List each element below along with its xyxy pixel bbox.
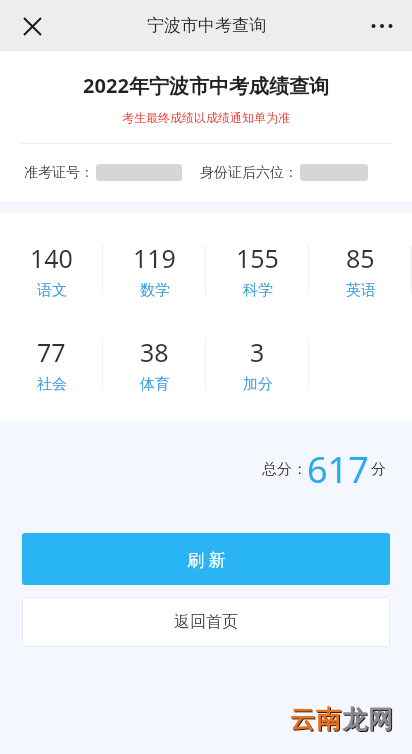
button[interactable]: 85 <box>309 227 412 313</box>
button[interactable]: More options <box>360 4 404 48</box>
staticText: 分 <box>371 460 386 479</box>
staticText: 77 <box>37 335 66 369</box>
button[interactable]: 140 <box>0 227 103 313</box>
staticText: 南 <box>316 704 341 735</box>
staticText: 云 <box>290 704 315 735</box>
staticText: 体育 <box>140 375 170 394</box>
button[interactable]: 38 <box>103 321 206 407</box>
button[interactable]: 3 <box>206 321 309 407</box>
button[interactable]: 119 <box>103 227 206 313</box>
staticText: 南 <box>317 705 342 736</box>
staticText: 云 <box>291 705 316 736</box>
button[interactable]: 刷 新 <box>22 533 390 585</box>
staticText: 617 <box>307 445 369 494</box>
staticText: 85 <box>346 241 375 275</box>
staticText: 155 <box>236 241 279 275</box>
staticText: 准考证号： <box>24 164 94 182</box>
staticText: 龙 <box>343 705 368 736</box>
staticText: 龙 <box>342 704 367 735</box>
button[interactable]: 77 <box>0 321 103 407</box>
staticText: 科学 <box>243 281 273 300</box>
staticText: 宁波市中考查询 <box>147 15 266 36</box>
staticText: 网 <box>369 705 394 736</box>
staticText: 考生最终成绩以成绩通知单为准 <box>0 110 412 125</box>
staticText: 3 <box>250 335 265 369</box>
button[interactable]: 返回首页 <box>22 597 390 647</box>
staticText: 加分 <box>243 375 273 394</box>
staticText: 刷 新 <box>187 548 226 571</box>
staticText: 数学 <box>140 281 170 300</box>
staticText: 2022年宁波市中考成绩查询 <box>0 72 412 99</box>
button[interactable]: Close <box>10 4 54 48</box>
staticText: 总分： <box>262 460 307 479</box>
staticText: 140 <box>30 241 73 275</box>
staticText: 返回首页 <box>174 612 238 632</box>
staticText: 语文 <box>37 281 67 300</box>
staticText: 119 <box>133 241 176 275</box>
staticText: 社会 <box>37 375 67 394</box>
staticText: 英语 <box>346 281 376 300</box>
button[interactable]: 155 <box>206 227 309 313</box>
staticText: 38 <box>140 335 169 369</box>
staticText: 网 <box>368 704 393 735</box>
staticText: 身份证后六位： <box>200 164 298 182</box>
